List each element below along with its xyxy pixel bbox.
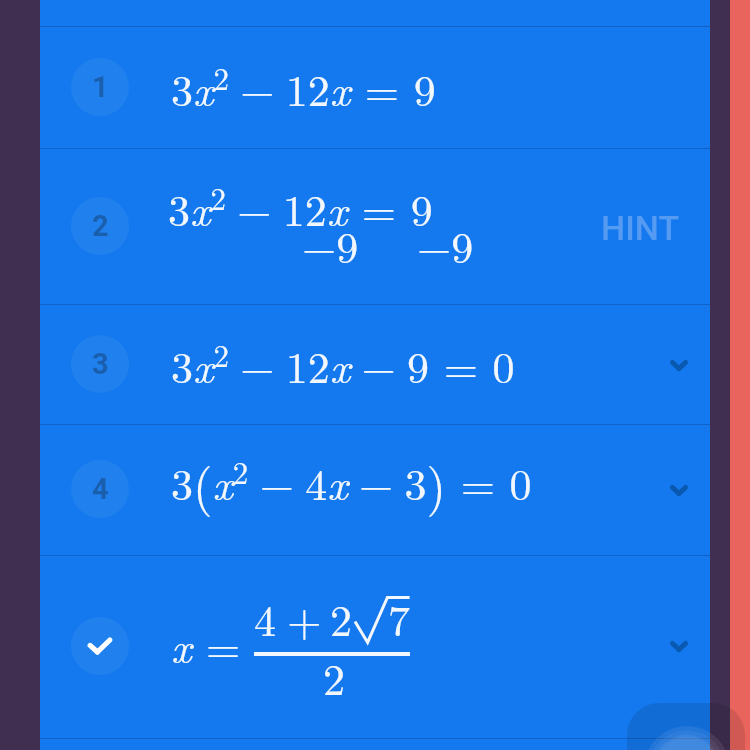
button[interactable]: Expand step [653, 620, 705, 672]
staticText: 1 [92, 70, 109, 104]
button[interactable] [40, 26, 710, 148]
button[interactable]: Scan with camera [627, 703, 745, 750]
staticText: 3 [92, 347, 109, 381]
button[interactable] [40, 424, 710, 555]
staticText: 4 [92, 472, 109, 506]
staticText: 3x2 − 12x = 9 [168, 175, 433, 239]
staticText: x = [171, 613, 241, 675]
button[interactable] [40, 555, 710, 738]
button[interactable]: Expand step [653, 464, 705, 516]
staticText: 7 [388, 586, 410, 648]
staticText: 2 [323, 645, 345, 707]
button[interactable]: Expand step [653, 339, 705, 391]
staticText: 4 + [254, 586, 322, 648]
button[interactable] [40, 304, 710, 424]
button[interactable] [40, 148, 710, 304]
staticText: 3x2 − 12x = 9 [171, 55, 436, 119]
staticText: 3(x2 − 4x − 3) = 0 [171, 448, 532, 519]
staticText: 3x2 − 12x − 9 = 0 [171, 332, 515, 396]
button[interactable]: HINT [581, 194, 700, 262]
staticText: −9 [417, 213, 474, 275]
staticText: HINT [601, 208, 680, 248]
staticText: −9 [302, 213, 359, 275]
staticText: 2 [92, 209, 109, 243]
staticText: 2 [330, 586, 352, 648]
